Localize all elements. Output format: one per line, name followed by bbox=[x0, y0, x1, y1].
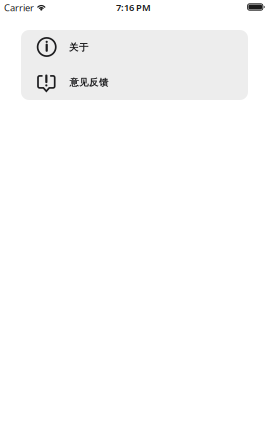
staticText: Carrier bbox=[4, 1, 34, 14]
staticText: 意见反馈 bbox=[69, 77, 108, 88]
button[interactable]: 意见反馈 bbox=[21, 65, 248, 100]
button[interactable]: 关于 bbox=[21, 30, 248, 65]
staticText: 关于 bbox=[69, 42, 88, 53]
staticText: 7:16 PM bbox=[116, 1, 151, 14]
